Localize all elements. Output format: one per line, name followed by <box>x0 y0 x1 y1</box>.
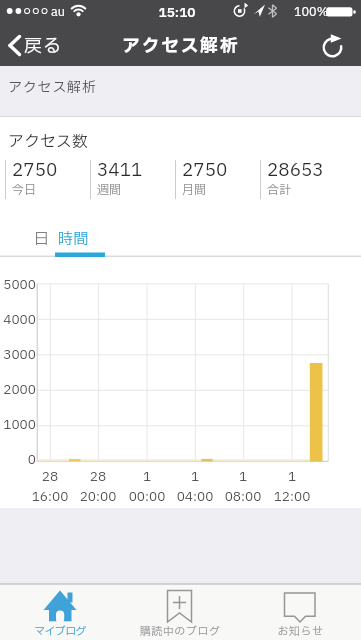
staticText: 時間 <box>58 228 90 250</box>
staticText: 1 <box>217 467 269 493</box>
button[interactable] <box>120 584 240 640</box>
staticText: 0 <box>0 450 36 476</box>
staticText: 5000 <box>0 275 36 301</box>
staticText: 戻る <box>24 33 62 60</box>
staticText: 04:00 <box>169 487 221 513</box>
staticText: 今日 <box>12 181 37 199</box>
staticText: 4000 <box>0 310 36 336</box>
staticText: 16:00 <box>24 487 76 513</box>
button[interactable] <box>55 228 105 258</box>
button[interactable] <box>0 584 120 640</box>
staticText: アクセス解析 <box>8 77 97 98</box>
staticText: 1 <box>169 467 221 493</box>
staticText: 20:00 <box>72 487 124 513</box>
staticText: au <box>51 3 65 21</box>
staticText: 週間 <box>97 181 122 199</box>
staticText: 00:00 <box>121 487 173 513</box>
staticText: 1000 <box>0 415 36 441</box>
staticText: 3411 <box>97 157 143 184</box>
staticText: 日 <box>34 228 50 250</box>
staticText: 月間 <box>182 181 207 199</box>
button[interactable] <box>15 228 55 258</box>
staticText: 2750 <box>182 157 228 184</box>
staticText: 3000 <box>0 345 36 371</box>
staticText: 28 <box>24 467 76 493</box>
staticText: 100% <box>294 3 329 21</box>
staticText: 15:10 <box>147 3 207 29</box>
staticText: 1 <box>266 467 318 493</box>
staticText: 2000 <box>0 380 36 406</box>
staticText: 1 <box>121 467 173 493</box>
button[interactable] <box>318 24 361 64</box>
staticText: アクセス数 <box>8 130 88 154</box>
staticText: アクセス解析 <box>0 33 361 69</box>
staticText: マイブログ <box>0 623 120 640</box>
staticText: 購読中のブログ <box>120 623 240 640</box>
staticText: お知らせ <box>240 623 361 640</box>
staticText: 合計 <box>267 181 292 199</box>
staticText: 28653 <box>267 157 324 184</box>
staticText: 28 <box>72 467 124 493</box>
staticText: 08:00 <box>217 487 269 513</box>
staticText: 2750 <box>12 157 58 184</box>
button[interactable] <box>0 24 70 64</box>
button[interactable] <box>240 584 361 640</box>
staticText: 12:00 <box>266 487 318 513</box>
